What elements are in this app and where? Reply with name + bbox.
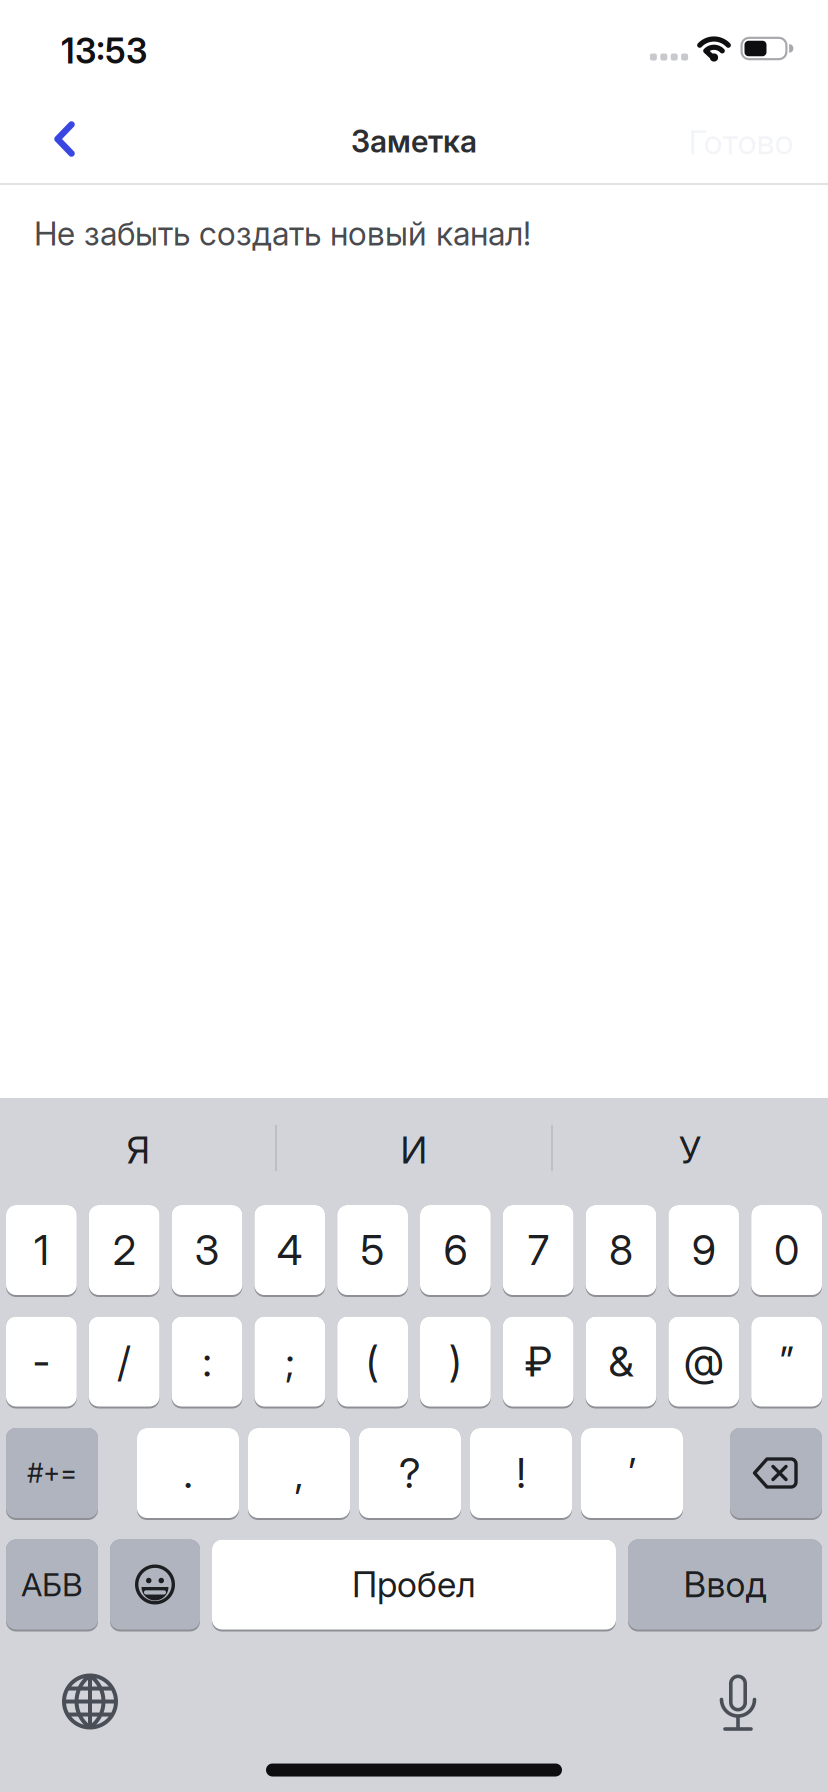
staticText: , <box>294 1448 303 1498</box>
staticText: ₽ <box>525 1336 552 1386</box>
staticText: 6 <box>443 1225 467 1275</box>
staticText: Ввод <box>683 1563 766 1606</box>
staticText: ) <box>449 1336 462 1386</box>
staticText: 4 <box>277 1225 303 1275</box>
staticText: 2 <box>113 1225 136 1275</box>
staticText: & <box>608 1336 633 1386</box>
staticText: У <box>679 1128 701 1172</box>
staticText: Я <box>126 1128 149 1172</box>
staticText: @ <box>684 1336 724 1386</box>
staticText: 1 <box>34 1225 49 1275</box>
staticText: И <box>400 1128 427 1172</box>
staticText: 7 <box>528 1225 549 1275</box>
staticText: 3 <box>194 1225 219 1275</box>
staticText: . <box>183 1448 192 1498</box>
staticText: - <box>32 1336 50 1386</box>
staticText: 0 <box>774 1225 799 1275</box>
staticText: ( <box>366 1336 379 1386</box>
staticText: 5 <box>361 1225 385 1275</box>
staticText: #+= <box>27 1457 77 1489</box>
staticText: : <box>202 1336 211 1386</box>
staticText: / <box>117 1336 131 1386</box>
staticText: 9 <box>692 1225 716 1275</box>
staticText: ! <box>516 1448 525 1498</box>
staticText: Не забыть создать новый канал! <box>34 214 531 253</box>
staticText: ” <box>780 1336 794 1386</box>
staticText: ’ <box>628 1448 636 1498</box>
staticText: Заметка <box>351 123 477 160</box>
staticText: 8 <box>609 1225 633 1275</box>
staticText: Готово <box>688 122 793 162</box>
staticText: Пробел <box>352 1563 476 1606</box>
staticText: ; <box>285 1336 294 1386</box>
staticText: ? <box>399 1448 421 1498</box>
staticText: АБВ <box>21 1565 83 1604</box>
staticText: 13:53 <box>61 30 147 72</box>
